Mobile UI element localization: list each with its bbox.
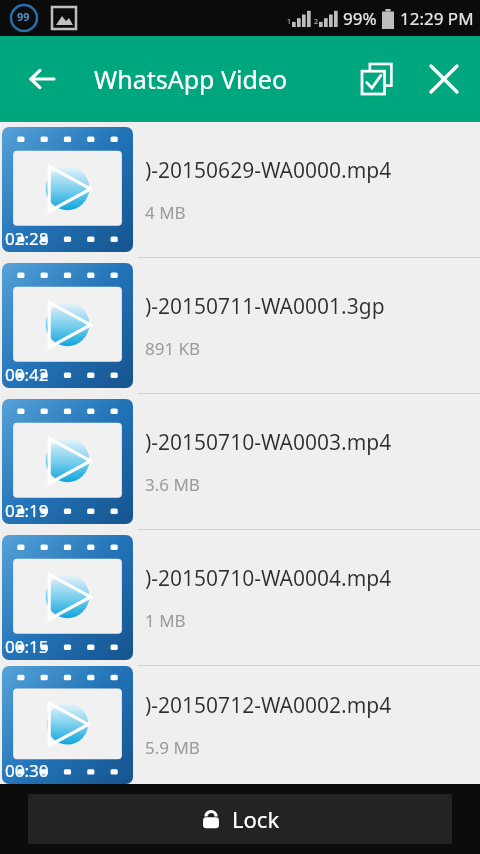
staticText: 02:28	[5, 227, 49, 250]
staticText: 99	[17, 9, 30, 24]
staticText: 3.6 MB	[145, 473, 200, 496]
button[interactable]: Back	[14, 51, 70, 107]
staticText: )-20150710-WA0003.mp4	[145, 428, 392, 457]
staticText: 2	[314, 17, 319, 27]
staticText: 1	[287, 17, 292, 27]
staticText: 99%	[343, 7, 377, 30]
staticText: 00:30	[5, 759, 49, 782]
button[interactable]: Close	[416, 51, 472, 107]
staticText: )-20150710-WA0004.mp4	[145, 564, 392, 593]
staticText: )-20150711-WA0001.3gp	[145, 292, 385, 321]
staticText: WhatsApp Video	[94, 62, 288, 96]
staticText: 1 MB	[145, 609, 186, 632]
staticText: 02:19	[5, 499, 49, 522]
button[interactable]: Lock	[28, 794, 452, 844]
staticText: )-20150712-WA0002.mp4	[145, 691, 392, 720]
staticText: )-20150629-WA0000.mp4	[145, 156, 392, 185]
staticText: 891 KB	[145, 337, 201, 360]
button[interactable]: 00:30	[0, 666, 480, 784]
staticText: 5.9 MB	[145, 736, 200, 759]
button[interactable]: 02:19	[0, 394, 480, 529]
button[interactable]: 02:28	[0, 122, 480, 257]
button[interactable]: Select all	[348, 50, 406, 108]
button[interactable]: 00:42	[0, 258, 480, 393]
staticText: 12:29 PM	[400, 7, 474, 30]
staticText: Lock	[232, 804, 280, 834]
button[interactable]: 00:15	[0, 530, 480, 665]
staticText: 00:42	[5, 363, 49, 386]
staticText: 4 MB	[145, 201, 186, 224]
staticText: 00:15	[5, 635, 49, 658]
